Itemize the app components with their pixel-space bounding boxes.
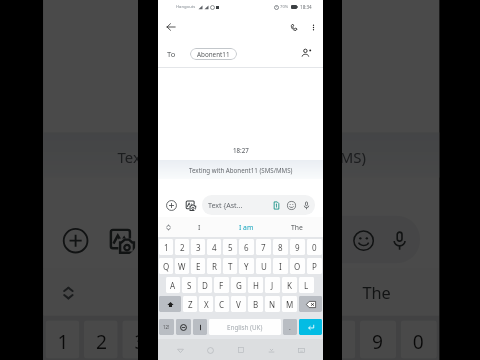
button[interactable]: Enter (299, 319, 322, 335)
button[interactable]: Text {Ast… (149, 216, 420, 263)
button[interactable]: Z (183, 296, 197, 312)
button[interactable]: Hide keyboard (263, 342, 279, 358)
button[interactable]: 5 (199, 320, 233, 358)
button[interactable]: Call (286, 19, 303, 36)
staticText: Z (188, 299, 193, 310)
button[interactable]: U (256, 258, 271, 274)
button[interactable]: 2 (175, 239, 189, 255)
button[interactable]: Add attachment (60, 225, 91, 256)
staticText: N (269, 299, 276, 310)
button[interactable]: I (178, 217, 221, 237)
button[interactable]: K (282, 277, 297, 293)
button[interactable]: A (166, 277, 180, 293)
button[interactable]: . (283, 319, 297, 335)
button[interactable]: 2 (84, 320, 118, 358)
button[interactable]: S (182, 277, 196, 293)
button[interactable]: I (91, 268, 194, 316)
button[interactable]: E (191, 258, 205, 274)
button[interactable]: D (198, 277, 212, 293)
button[interactable]: 9 (290, 239, 305, 255)
staticText: M (286, 299, 294, 310)
button[interactable]: B (248, 296, 263, 312)
staticText: 3 (134, 328, 146, 354)
button[interactable]: 7 (256, 239, 271, 255)
button[interactable]: Back (172, 342, 188, 358)
button[interactable]: 3 (122, 320, 156, 358)
button[interactable]: 8 (273, 239, 288, 255)
button[interactable]: 7 (278, 320, 314, 358)
button[interactable]: X (199, 296, 213, 312)
staticText: 0 (312, 242, 317, 253)
staticText: 18:34 (300, 4, 312, 10)
button[interactable]: C (215, 296, 229, 312)
button[interactable]: T (223, 258, 237, 274)
staticText: C (219, 299, 225, 310)
button[interactable]: The (314, 268, 439, 316)
button[interactable]: H (248, 277, 263, 293)
staticText: W (178, 261, 186, 272)
staticText: Text {Ast… (208, 200, 243, 210)
staticText: . (289, 323, 291, 332)
staticText: D (202, 280, 208, 291)
button[interactable]: M (282, 296, 297, 312)
button[interactable]: L (299, 277, 314, 293)
staticText: U (261, 261, 267, 272)
button[interactable]: Shift (159, 296, 181, 312)
button[interactable]: Add attachment (165, 199, 178, 212)
button[interactable]: Recent apps (233, 342, 249, 358)
button[interactable]: Back (162, 18, 180, 36)
button[interactable]: 5 (223, 239, 237, 255)
staticText: H (253, 280, 259, 291)
button[interactable]: I (273, 258, 288, 274)
button[interactable]: 4 (207, 239, 221, 255)
staticText: 3 (196, 242, 201, 253)
button[interactable]: G (231, 277, 246, 293)
button[interactable]: Expand suggestions (158, 217, 178, 237)
button[interactable]: Emoji (176, 319, 191, 335)
button[interactable]: 0 (307, 239, 322, 255)
staticText: 7 (261, 242, 266, 253)
button[interactable]: O (290, 258, 305, 274)
button[interactable]: 6 (239, 239, 254, 255)
button[interactable]: Backspace (299, 296, 322, 312)
button[interactable]: 0 (401, 320, 437, 358)
button[interactable]: V (231, 296, 246, 312)
button[interactable]: Switch keyboard (293, 342, 309, 358)
button[interactable]: 9 (360, 320, 396, 358)
button[interactable]: Gallery (184, 199, 197, 212)
button[interactable]: I am (221, 217, 271, 237)
button[interactable]: N (265, 296, 280, 312)
staticText: A (170, 280, 176, 291)
staticText: 8 (331, 328, 343, 354)
button[interactable]: Q (159, 258, 173, 274)
button[interactable]: English (UK) (209, 319, 281, 335)
staticText: 12! (163, 324, 170, 330)
staticText: Q (163, 261, 170, 272)
button[interactable]: 3 (191, 239, 205, 255)
button[interactable]: 1 (46, 320, 79, 358)
button[interactable]: I am (194, 268, 314, 316)
button[interactable]: The (271, 217, 323, 237)
button[interactable]: Text {Ast… (202, 195, 315, 215)
button[interactable]: 6 (238, 320, 274, 358)
button[interactable]: P (307, 258, 322, 274)
staticText: P (312, 261, 317, 272)
button[interactable]: Home (202, 342, 218, 358)
button[interactable]: 8 (319, 320, 355, 358)
staticText: O (294, 261, 301, 272)
button[interactable]: 4 (161, 320, 194, 358)
button[interactable]: Y (239, 258, 254, 274)
staticText: K (287, 280, 292, 291)
button[interactable]: Expand suggestions (43, 268, 91, 316)
button[interactable]: R (207, 258, 221, 274)
button[interactable]: Add recipient (299, 46, 314, 61)
button[interactable]: 1 (159, 239, 173, 255)
button[interactable]: 12! (159, 319, 174, 335)
button[interactable]: J (265, 277, 280, 293)
button[interactable]: F (214, 277, 229, 293)
button[interactable]: Gallery (106, 225, 137, 256)
button[interactable]: W (175, 258, 189, 274)
button[interactable]: Voice input (193, 319, 207, 335)
button[interactable]: Abonent11 (190, 48, 237, 60)
button[interactable]: More options (307, 21, 320, 34)
